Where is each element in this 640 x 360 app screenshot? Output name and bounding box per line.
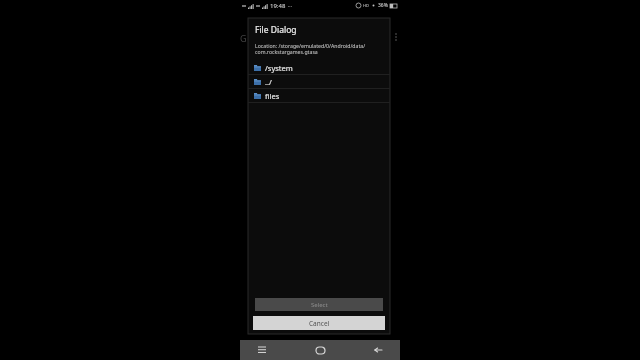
button[interactable]: Back	[370, 342, 386, 358]
staticText: files	[265, 91, 280, 101]
staticText: /system	[265, 63, 293, 73]
staticText: Cancel	[309, 319, 330, 328]
staticText: 19:48	[270, 2, 286, 10]
button[interactable]: ../	[248, 75, 390, 89]
button[interactable]: Cancel	[253, 316, 385, 330]
button[interactable]: Select	[255, 298, 383, 311]
staticText: HD	[363, 3, 369, 8]
button[interactable]: Home	[312, 342, 328, 358]
staticText: Select	[311, 301, 328, 309]
staticText: ../	[265, 77, 272, 87]
button[interactable]: files	[248, 89, 390, 103]
staticText: ···	[288, 3, 293, 10]
staticText: G	[240, 32, 247, 44]
staticText: 36%	[378, 2, 388, 9]
staticText: Location: /storage/emulated/0/Android/da…	[255, 42, 384, 56]
button[interactable]: /system	[248, 61, 390, 75]
button[interactable]: More options	[395, 33, 397, 41]
button[interactable]: Recent apps	[254, 342, 270, 358]
staticText: File Dialog	[255, 24, 297, 36]
